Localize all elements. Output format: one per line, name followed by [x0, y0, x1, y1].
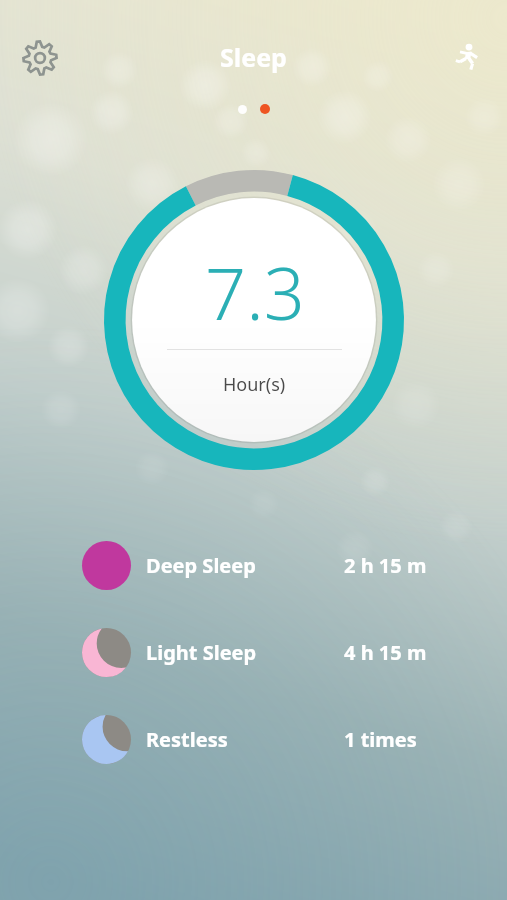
button[interactable]: Settings [12, 30, 68, 86]
button[interactable]: Restless [0, 696, 507, 783]
button[interactable]: 7.3 [104, 170, 404, 470]
staticText: Sleep [220, 40, 287, 74]
staticText: 2 h 15 m [344, 552, 427, 579]
staticText: Light Sleep [146, 639, 257, 666]
staticText: Hour(s) [223, 372, 286, 397]
button[interactable]: Deep Sleep [0, 522, 507, 609]
staticText: 1 times [344, 726, 417, 753]
staticText: 4 h 15 m [344, 639, 427, 666]
staticText: Restless [146, 726, 228, 753]
button[interactable]: Start exercise [439, 30, 493, 84]
button[interactable]: Light Sleep [0, 609, 507, 696]
staticText: Deep Sleep [146, 552, 256, 579]
staticText: 7.3 [205, 243, 305, 341]
